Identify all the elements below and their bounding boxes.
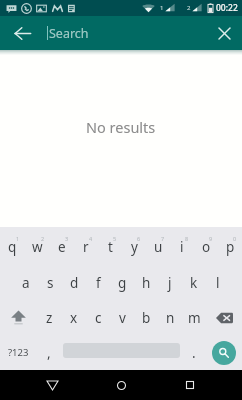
staticText: No results [86,117,156,137]
button[interactable]: 8 [170,229,194,265]
button[interactable]: ?123 [0,335,37,370]
staticText: 7 [161,235,165,242]
staticText: 6 [137,235,141,242]
staticText: 2 [41,235,45,242]
button[interactable]: 4 [74,229,98,265]
staticText: m [188,309,201,327]
button[interactable]: x [62,300,86,335]
staticText: , [47,344,51,362]
staticText: p [226,238,235,256]
staticText: s [47,274,54,292]
button[interactable]: z [37,300,62,335]
button[interactable]: 1 [0,229,25,265]
staticText: c [95,309,102,327]
button[interactable]: Home [104,370,138,400]
staticText: y [131,238,138,256]
staticText: j [168,274,172,292]
staticText: v [119,309,126,327]
button[interactable]: Backspace [206,300,242,335]
button[interactable]: Back [35,370,69,400]
button[interactable]: b [134,300,158,335]
staticText: a [22,274,30,292]
staticText: . [192,344,196,362]
button[interactable]: f [86,265,110,300]
button[interactable]: 7 [146,229,170,265]
staticText: 5 [113,235,117,242]
button[interactable]: c [86,300,110,335]
button[interactable]: Search [206,335,242,370]
button[interactable]: n [158,300,182,335]
button[interactable]: s [38,265,62,300]
button[interactable]: k [182,265,206,300]
staticText: 1 [16,235,20,242]
staticText: 0 [233,235,237,242]
staticText: 00:22 [216,2,238,14]
staticText: ?123 [8,346,29,359]
button[interactable]: j [158,265,182,300]
button[interactable]: a [13,265,38,300]
staticText: w [32,238,43,256]
staticText: q [8,238,17,256]
staticText: b [142,309,151,327]
staticText: 1 [160,4,164,12]
button[interactable]: l [206,265,230,300]
button[interactable]: 5 [98,229,122,265]
button[interactable]: Clear search [207,16,241,50]
button[interactable]: v [110,300,134,335]
staticText: 2 [187,4,191,12]
button[interactable]: 6 [122,229,146,265]
staticText: u [154,238,163,256]
staticText: f [96,274,101,292]
button[interactable]: h [134,265,158,300]
staticText: t [108,238,113,256]
button[interactable]: m [182,300,206,335]
staticText: n [166,309,175,327]
staticText: x [70,309,78,327]
staticText: 8 [185,235,189,242]
staticText: o [202,238,211,256]
button[interactable]: 2 [25,229,50,265]
staticText: z [46,309,53,327]
button[interactable]: , [37,335,61,370]
staticText: 9 [209,235,213,242]
button[interactable]: Back [0,16,44,50]
button[interactable]: Recent apps [173,370,207,400]
staticText: 4 [89,235,93,242]
staticText: 3 [65,235,69,242]
staticText: d [70,274,79,292]
button[interactable]: 3 [50,229,74,265]
staticText: Search [49,25,89,42]
staticText: r [83,238,89,256]
staticText: k [190,274,198,292]
staticText: g [118,274,127,292]
button[interactable]: . [182,335,206,370]
button[interactable]: d [62,265,86,300]
button[interactable]: Shift [0,300,37,335]
button[interactable]: 0 [218,229,242,265]
button[interactable]: g [110,265,134,300]
staticText: h [142,274,151,292]
staticText: l [216,274,220,292]
staticText: i [180,238,184,256]
staticText: e [58,238,66,256]
button[interactable]: 9 [194,229,218,265]
